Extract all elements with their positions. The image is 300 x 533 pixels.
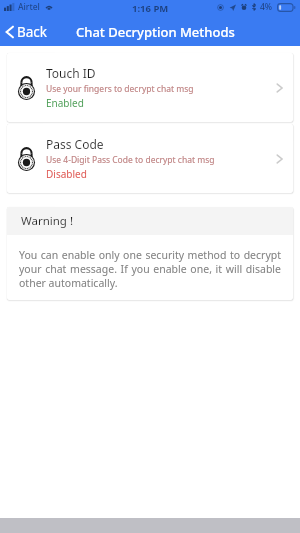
staticText: Enabled: [46, 96, 84, 110]
staticText: Use your fingers to decrypt chat msg: [46, 83, 194, 95]
staticText: Use 4-Digit Pass Code to decrypt chat ms…: [46, 154, 215, 166]
staticText: 1:16 PM: [132, 2, 169, 15]
staticText: Chat Decryption Methods: [76, 23, 235, 41]
staticText: You can enable only one security method …: [19, 248, 281, 290]
staticText: Disabled: [46, 167, 87, 181]
button[interactable]: Touch ID: [7, 53, 293, 122]
staticText: Back: [17, 23, 48, 41]
staticText: 4%: [260, 1, 273, 13]
staticText: Touch ID: [46, 65, 96, 81]
button[interactable]: Back: [0, 19, 56, 45]
staticText: Pass Code: [46, 136, 104, 152]
staticText: Airtel: [18, 1, 40, 13]
staticText: Warning !: [21, 213, 74, 229]
button[interactable]: Pass Code: [7, 124, 293, 193]
